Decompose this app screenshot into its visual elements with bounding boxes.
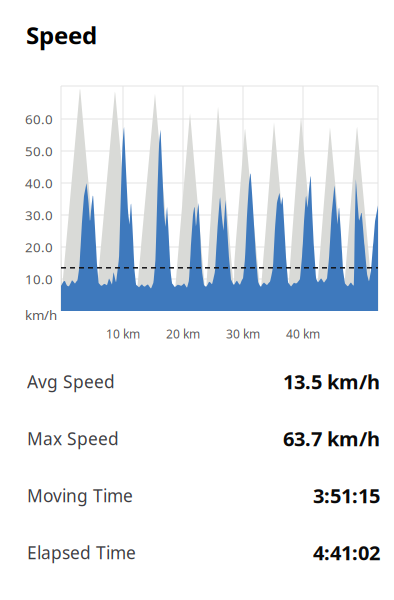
staticText: 20 km: [166, 326, 200, 342]
staticText: 40.0: [25, 174, 53, 192]
button[interactable]: Moving Time: [0, 467, 394, 524]
staticText: 13.5 km/h: [283, 368, 380, 395]
staticText: km/h: [25, 306, 57, 324]
staticText: 10 km: [106, 326, 140, 342]
staticText: 30.0: [25, 206, 53, 224]
staticText: 4:41:02: [313, 539, 380, 566]
staticText: 10.0: [25, 270, 53, 288]
button[interactable]: Elapsed Time: [0, 524, 394, 581]
staticText: Avg Speed: [27, 370, 115, 393]
button[interactable]: Avg Speed: [0, 353, 394, 410]
staticText: Speed: [26, 19, 97, 51]
staticText: 20.0: [25, 238, 53, 256]
staticText: 3:51:15: [313, 482, 380, 509]
staticText: Moving Time: [27, 484, 133, 507]
staticText: Elapsed Time: [27, 541, 136, 564]
staticText: 30 km: [226, 326, 260, 342]
staticText: 63.7 km/h: [283, 425, 380, 452]
staticText: 50.0: [25, 142, 53, 160]
staticText: Max Speed: [27, 427, 119, 450]
button[interactable]: Max Speed: [0, 410, 394, 467]
staticText: 40 km: [286, 326, 320, 342]
staticText: 60.0: [25, 110, 53, 128]
